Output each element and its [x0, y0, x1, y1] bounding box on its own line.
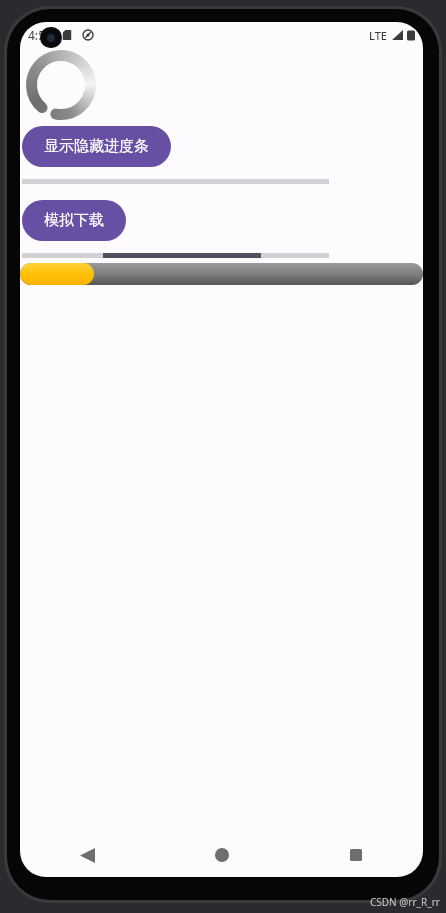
staticText: 显示隐藏进度条: [44, 137, 149, 156]
staticText: LTE: [369, 28, 387, 43]
button[interactable]: Home: [198, 833, 246, 877]
staticText: 4:51: [28, 27, 52, 43]
button[interactable]: 显示隐藏进度条: [22, 126, 171, 167]
staticText: CSDN @rr_R_rr: [370, 895, 440, 909]
staticText: 模拟下载: [44, 211, 104, 230]
button[interactable]: 模拟下载: [22, 200, 126, 241]
button[interactable]: Recent apps: [332, 833, 380, 877]
button[interactable]: Back: [63, 833, 111, 877]
